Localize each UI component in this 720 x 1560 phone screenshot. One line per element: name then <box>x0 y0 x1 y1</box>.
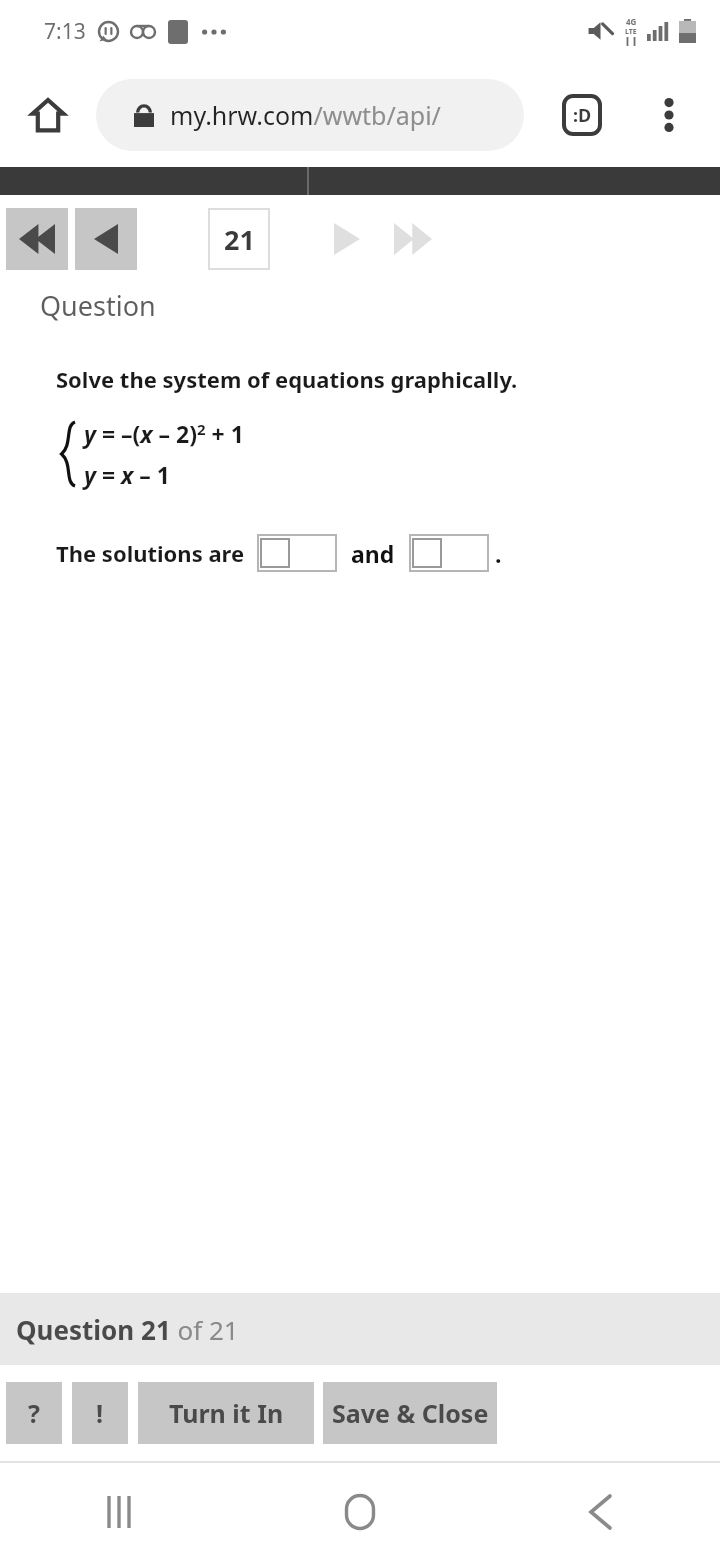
button[interactable] <box>409 534 489 572</box>
staticText: Save & Close <box>332 1396 489 1430</box>
staticText: Turn it In <box>169 1396 284 1430</box>
button[interactable]: my.hrw.com/wwtb/api/ <box>96 79 524 151</box>
staticText: ! <box>96 1396 104 1430</box>
button[interactable]: Back <box>562 1474 638 1550</box>
staticText: Question 21 of 21 <box>16 1312 239 1347</box>
button[interactable]: ? <box>6 1382 62 1444</box>
staticText: 21 <box>224 221 255 258</box>
button[interactable]: First question <box>6 208 68 270</box>
staticText: The solutions are <box>56 538 245 568</box>
button[interactable]: Next question <box>319 211 375 267</box>
button[interactable]: Turn it In <box>138 1382 314 1444</box>
button[interactable]: Home <box>20 87 76 143</box>
staticText: :D <box>573 103 592 128</box>
button[interactable]: Home <box>322 1474 398 1550</box>
button[interactable]: More options <box>642 88 696 142</box>
staticText: LTE <box>625 27 637 37</box>
staticText: Solve the system of equations graphicall… <box>56 364 518 394</box>
button[interactable]: Last question <box>385 211 441 267</box>
staticText: y = –(x – 2)2 + 1 <box>84 418 244 449</box>
staticText: ? <box>28 1396 40 1430</box>
staticText: Question <box>40 287 156 324</box>
staticText: 4G <box>626 16 637 27</box>
staticText: and <box>351 538 395 569</box>
button[interactable]: ! <box>72 1382 128 1444</box>
button[interactable]: Recent apps <box>82 1474 158 1550</box>
button[interactable]: Previous question <box>75 208 137 270</box>
staticText: my.hrw.com/wwtb/api/ <box>170 98 441 132</box>
button[interactable] <box>257 534 337 572</box>
staticText: y = x – 1 <box>84 459 170 490</box>
button[interactable]: Emoji <box>552 85 612 145</box>
button[interactable]: 21 <box>210 210 268 268</box>
staticText: . <box>495 538 502 569</box>
staticText: 7:13 <box>44 17 86 46</box>
button[interactable]: Save & Close <box>323 1382 497 1444</box>
